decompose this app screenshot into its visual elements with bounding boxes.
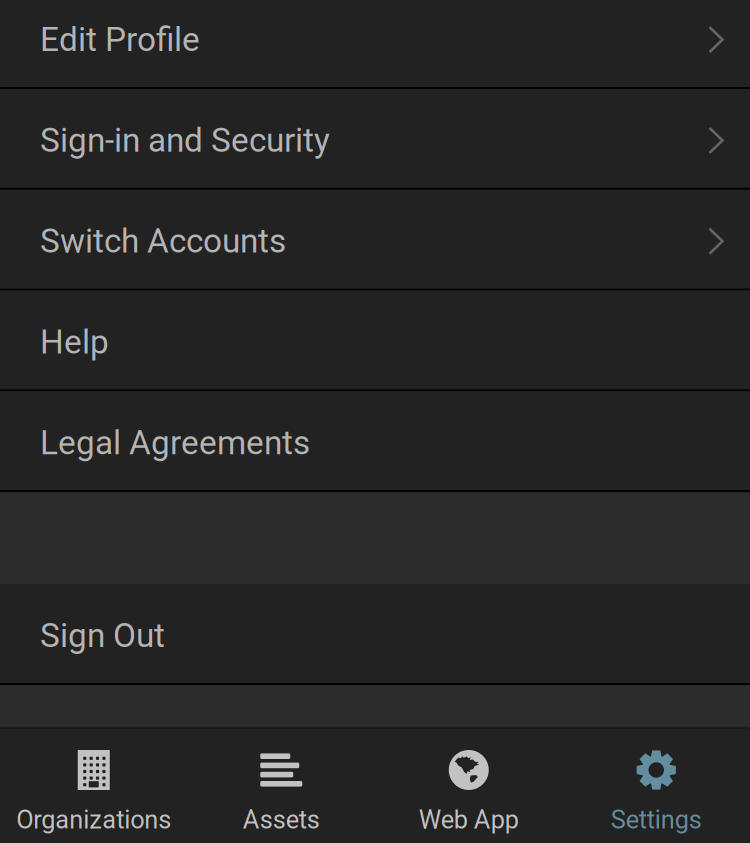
- button[interactable]: Help: [0, 291, 750, 391]
- button[interactable]: Organizations: [0, 729, 187, 843]
- button[interactable]: Sign Out: [0, 584, 750, 685]
- staticText: Help: [40, 322, 109, 362]
- staticText: Edit Profile: [40, 20, 200, 59]
- staticText: Legal Agreements: [40, 423, 310, 462]
- staticText: Switch Accounts: [40, 222, 286, 261]
- button[interactable]: Web App: [375, 729, 562, 843]
- button[interactable]: Edit Profile: [0, 0, 750, 89]
- staticText: Sign-in and Security: [40, 121, 330, 160]
- staticText: Assets: [243, 805, 320, 835]
- button[interactable]: Settings: [562, 729, 750, 843]
- button[interactable]: Sign-in and Security: [0, 89, 750, 190]
- button[interactable]: Switch Accounts: [0, 190, 750, 291]
- staticText: Web App: [419, 805, 519, 835]
- staticText: Settings: [611, 805, 702, 835]
- button[interactable]: Legal Agreements: [0, 391, 750, 492]
- staticText: Organizations: [16, 805, 171, 835]
- button[interactable]: Assets: [187, 729, 375, 843]
- staticText: Sign Out: [40, 616, 165, 655]
